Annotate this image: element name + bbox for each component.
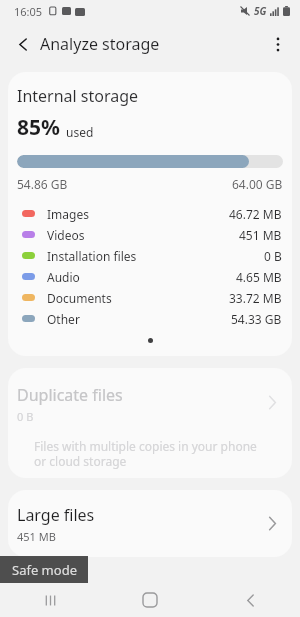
staticText: 16:05	[14, 4, 43, 19]
button[interactable]: Home	[100, 583, 200, 617]
staticText: 0 B	[17, 409, 34, 424]
staticText: 54.86 GB	[17, 176, 68, 192]
button[interactable]: Back	[6, 27, 40, 61]
staticText: 64.00 GB	[232, 176, 283, 192]
staticText: 451 MB	[17, 529, 56, 544]
staticText: Large files	[17, 504, 95, 526]
staticText: Images	[47, 206, 89, 222]
staticText: Internal storage	[17, 85, 139, 107]
staticText: 0 B	[264, 248, 282, 264]
staticText: Documents	[47, 290, 112, 306]
staticText: used	[66, 124, 94, 140]
staticText: 5G	[254, 4, 267, 18]
button[interactable]: Images	[17, 203, 283, 224]
button[interactable]: Documents	[17, 287, 283, 308]
staticText: Files with multiple copies in your phone…	[34, 438, 264, 469]
staticText: Analyze storage	[40, 33, 160, 55]
staticText: Videos	[47, 227, 85, 243]
staticText: Other	[47, 311, 80, 327]
button[interactable]: Other	[17, 308, 283, 329]
button[interactable]: Videos	[17, 224, 283, 245]
button[interactable]: More options	[261, 27, 295, 61]
staticText: Duplicate files	[17, 384, 123, 406]
button[interactable]: Duplicate files	[8, 368, 292, 478]
staticText: 33.72 MB	[229, 290, 282, 306]
staticText: 451 MB	[239, 227, 282, 243]
staticText: Safe mode	[12, 561, 77, 579]
staticText: 46.72 MB	[229, 206, 282, 222]
button[interactable]: Recent apps	[0, 583, 100, 617]
button[interactable]: Large files	[8, 490, 292, 557]
button[interactable]: Back	[200, 583, 300, 617]
button[interactable]: Internal storage	[8, 72, 292, 356]
staticText: Installation files	[47, 248, 137, 264]
staticText: 85%	[17, 113, 60, 142]
staticText: 4.65 MB	[236, 269, 282, 285]
button[interactable]: Installation files	[17, 245, 283, 266]
button[interactable]: Audio	[17, 266, 283, 287]
staticText: 54.33 GB	[231, 311, 282, 327]
staticText: Audio	[47, 269, 80, 285]
